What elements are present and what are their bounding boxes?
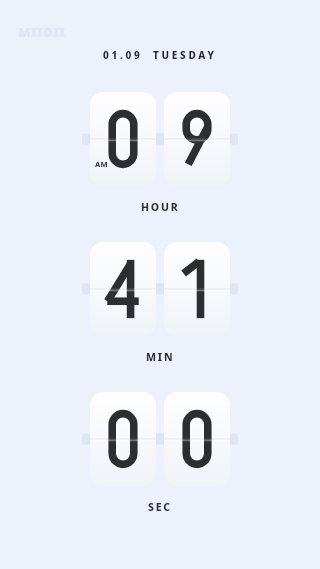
staticText: SEC bbox=[148, 500, 172, 514]
button[interactable]: Flip digit 0 bbox=[164, 392, 230, 486]
button[interactable]: Flip digit 4 bbox=[90, 242, 156, 336]
button[interactable]: Flip digit 0 bbox=[90, 92, 156, 186]
staticText: HOUR bbox=[141, 200, 180, 214]
staticText: MIIDII bbox=[18, 23, 66, 41]
button[interactable]: Flip digit 0 bbox=[90, 392, 156, 486]
staticText: AM bbox=[95, 159, 108, 169]
button[interactable]: Flip digit 9 bbox=[164, 92, 230, 186]
button[interactable]: Flip digit 1 bbox=[164, 242, 230, 336]
staticText: MIN bbox=[146, 350, 175, 364]
staticText: 01.09 TUESDAY bbox=[103, 48, 217, 62]
